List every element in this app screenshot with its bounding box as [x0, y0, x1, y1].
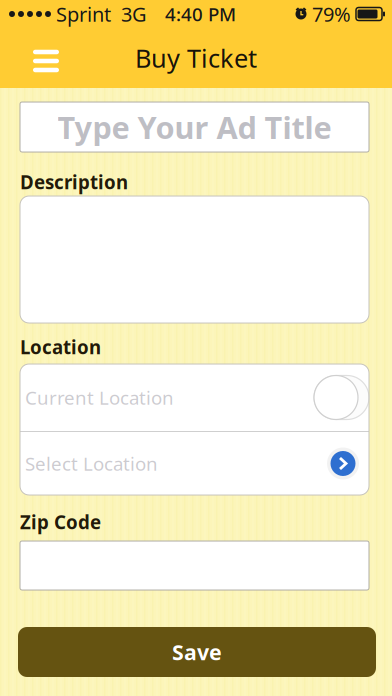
staticText: Description [20, 170, 128, 194]
button[interactable]: Select Location [20, 432, 369, 495]
staticText: Select Location [25, 451, 158, 476]
staticText: Location [20, 335, 101, 359]
staticText: Buy Ticket [135, 41, 257, 75]
staticText: 3G [111, 1, 147, 27]
staticText: 79% [307, 1, 356, 27]
button[interactable]: Menu [20, 28, 72, 88]
staticText: Type Your Ad Title [57, 107, 331, 147]
staticText: Sprint [51, 1, 111, 27]
staticText: Zip Code [20, 510, 101, 534]
staticText: 4:40 PM [165, 2, 236, 26]
staticText: Save [172, 638, 222, 666]
staticText: Current Location [25, 385, 174, 410]
button[interactable]: Save [18, 627, 376, 677]
